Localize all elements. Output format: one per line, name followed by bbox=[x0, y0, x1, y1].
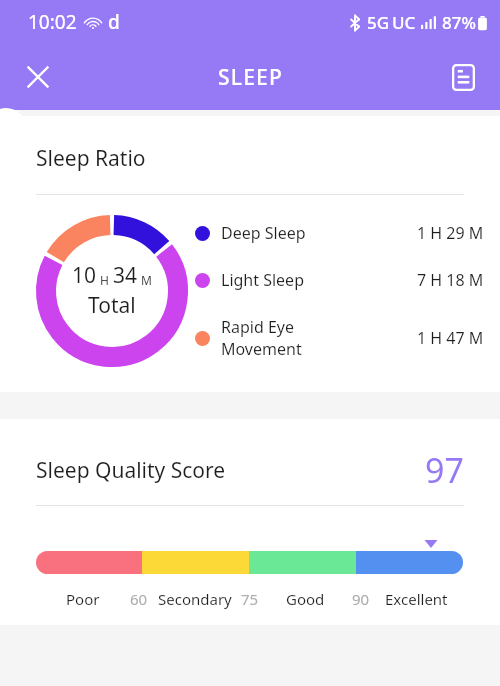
staticText: Total bbox=[88, 291, 136, 320]
button[interactable]: Light Sleep bbox=[195, 269, 484, 291]
staticText: 5G bbox=[367, 11, 390, 34]
staticText: 75 bbox=[241, 589, 259, 609]
staticText: 10:02 bbox=[28, 9, 77, 35]
staticText: 87% bbox=[442, 11, 476, 34]
button[interactable]: Close bbox=[14, 53, 62, 101]
button[interactable]: Sleep log bbox=[440, 54, 486, 100]
staticText: Secondary bbox=[158, 589, 232, 609]
button[interactable]: Rapid Eye bbox=[195, 316, 484, 360]
staticText: H bbox=[100, 272, 109, 288]
staticText: 1 H 47 M bbox=[417, 327, 484, 349]
button[interactable]: Deep Sleep bbox=[195, 222, 484, 244]
staticText: SLEEP bbox=[218, 63, 283, 92]
staticText: Sleep Ratio bbox=[36, 144, 146, 173]
staticText: 1 H 29 M bbox=[417, 222, 484, 244]
staticText: 97 bbox=[425, 447, 464, 493]
staticText: M bbox=[141, 272, 152, 288]
staticText: Sleep Quality Score bbox=[36, 456, 226, 485]
staticText: 10 bbox=[72, 261, 97, 290]
staticText: Excellent bbox=[385, 589, 448, 609]
staticText: Rapid Eye bbox=[221, 316, 294, 338]
staticText: Deep Sleep bbox=[221, 222, 306, 244]
staticText: d bbox=[108, 9, 120, 35]
staticText: Movement bbox=[221, 338, 302, 360]
staticText: Good bbox=[286, 589, 325, 609]
staticText: 60 bbox=[130, 589, 148, 609]
staticText: UC bbox=[392, 11, 416, 34]
button[interactable] bbox=[36, 551, 463, 574]
staticText: 34 bbox=[113, 261, 138, 290]
staticText: Light Sleep bbox=[221, 269, 304, 291]
staticText: Poor bbox=[66, 589, 100, 609]
staticText: 7 H 18 M bbox=[417, 269, 484, 291]
staticText: 90 bbox=[352, 589, 370, 609]
